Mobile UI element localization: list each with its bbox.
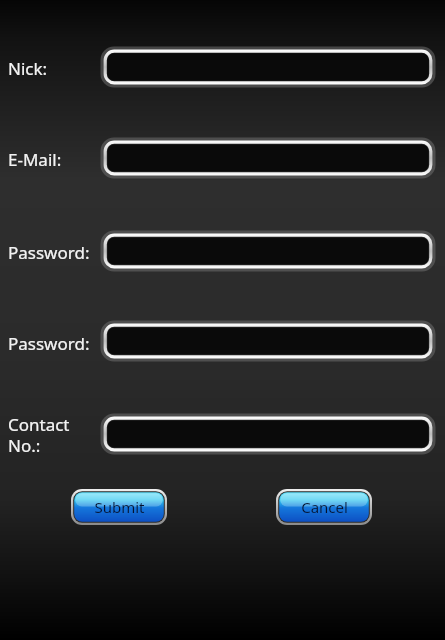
staticText: Submit <box>94 497 145 517</box>
button[interactable] <box>103 416 433 452</box>
button[interactable] <box>103 323 433 359</box>
staticText: Contact No.: <box>8 413 100 457</box>
button[interactable] <box>103 140 433 176</box>
staticText: Password: <box>8 241 90 264</box>
button[interactable]: Cancel <box>276 489 372 525</box>
button[interactable]: Submit <box>71 489 167 525</box>
button[interactable] <box>103 49 433 85</box>
staticText: Cancel <box>301 497 348 517</box>
button[interactable] <box>103 233 433 269</box>
staticText: Nick: <box>8 57 48 80</box>
staticText: E-Mail: <box>8 148 62 171</box>
staticText: Password: <box>8 332 90 355</box>
